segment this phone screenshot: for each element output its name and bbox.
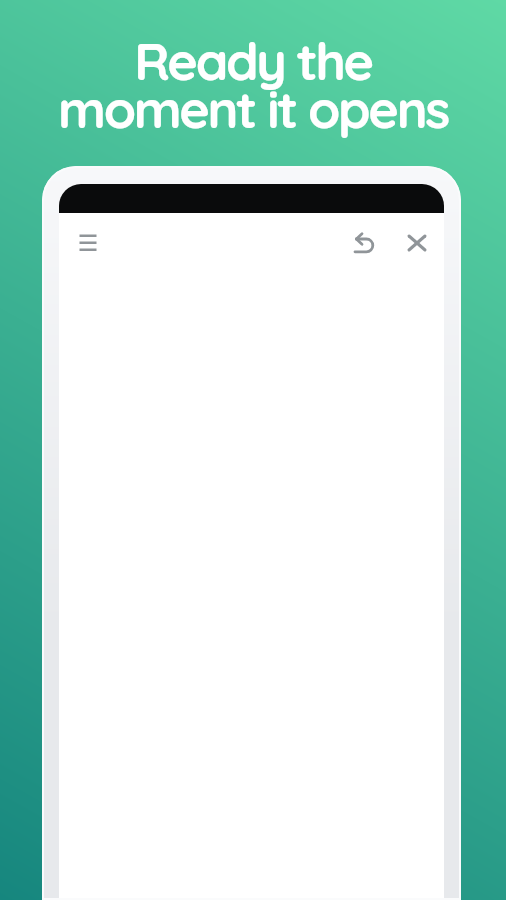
button[interactable] [397, 223, 437, 263]
button[interactable] [344, 223, 384, 263]
button[interactable] [68, 223, 108, 263]
staticText: Ready the moment it opens [0, 28, 506, 141]
